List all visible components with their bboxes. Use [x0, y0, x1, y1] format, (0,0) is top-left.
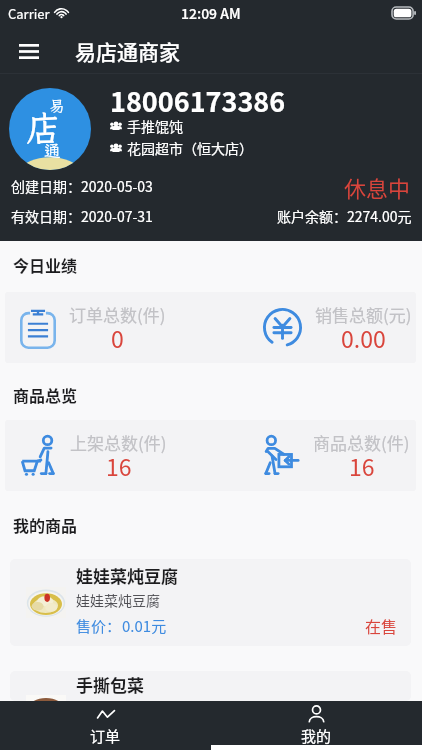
- staticText: 手撕包菜: [76, 672, 144, 697]
- staticText: 订单: [90, 725, 121, 747]
- button[interactable]: 娃娃菜炖豆腐: [10, 559, 411, 646]
- button[interactable]: 手撕包菜: [10, 671, 411, 701]
- staticText: 销售总额(元): [315, 302, 412, 327]
- staticText: 商品总数(件): [313, 430, 410, 455]
- button[interactable]: Menu: [0, 28, 57, 74]
- staticText: 0.00: [341, 321, 386, 354]
- staticText: 0.01元: [122, 615, 167, 637]
- staticText: 通: [44, 139, 61, 161]
- button[interactable]: 销售总额(元): [210, 292, 416, 363]
- staticText: 订单总数(件): [69, 302, 166, 327]
- staticText: 账户余额：2274.00元: [277, 206, 412, 226]
- staticText: 我的: [301, 725, 332, 747]
- staticText: 我的商品: [13, 513, 78, 536]
- staticText: 18006173386: [110, 81, 286, 120]
- button[interactable]: 订单总数(件): [5, 292, 210, 363]
- button[interactable]: 商品总数(件): [210, 420, 416, 491]
- staticText: 0: [111, 321, 124, 354]
- staticText: 16: [106, 449, 132, 482]
- staticText: 手推馄饨: [127, 116, 183, 136]
- button[interactable]: 订单: [0, 701, 211, 750]
- staticText: 娃娃菜炖豆腐: [76, 590, 160, 610]
- staticText: 休息中: [344, 171, 411, 201]
- staticText: 商品总览: [13, 383, 78, 406]
- staticText: 16: [349, 449, 375, 482]
- staticText: 上架总数(件): [70, 430, 167, 455]
- staticText: 在售: [365, 614, 398, 637]
- staticText: 创建日期：2020-05-03: [11, 176, 153, 196]
- staticText: 12:09 AM: [181, 3, 241, 23]
- staticText: 易: [49, 95, 66, 116]
- staticText: 有效日期：2020-07-31: [11, 206, 153, 226]
- staticText: 易店通商家: [75, 36, 180, 66]
- staticText: 店: [26, 105, 62, 151]
- staticText: Carrier: [8, 4, 50, 23]
- staticText: 娃娃菜炖豆腐: [76, 563, 178, 588]
- staticText: 售价：: [76, 615, 122, 637]
- button[interactable]: 我的: [211, 701, 422, 750]
- staticText: 花园超市（恒大店）: [127, 138, 253, 158]
- staticText: 今日业绩: [13, 253, 78, 276]
- button[interactable]: 上架总数(件): [5, 420, 210, 491]
